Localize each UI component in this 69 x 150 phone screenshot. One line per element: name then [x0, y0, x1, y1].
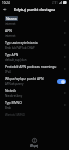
staticText: Więcej [30, 144, 39, 148]
staticText: APN włączony [5, 82, 24, 86]
staticText: Nieokreślony [5, 94, 23, 98]
button[interactable]: Więcej [27, 137, 42, 149]
staticText: APN [5, 28, 12, 33]
staticText: Edytuj punkt dostępu [14, 7, 55, 12]
staticText: Brak lub PAP lub CHAP [5, 46, 35, 50]
button[interactable]: Typ uwierzytelniania [0, 39, 69, 51]
staticText: internet [5, 34, 16, 38]
staticText: internet [5, 22, 16, 26]
button[interactable]: Protokół APN podczas roamingu [0, 63, 69, 75]
staticText: Nośnik [5, 88, 17, 93]
staticText: Typ MVNO [5, 100, 22, 105]
staticText: Wartość MVNO [5, 113, 25, 117]
button[interactable]: Nośnik [0, 87, 69, 99]
staticText: IPv4 [5, 70, 11, 74]
staticText: Brak [5, 106, 11, 110]
button[interactable]: Nazwa [0, 15, 69, 27]
button[interactable]: Typ MVNO [0, 99, 69, 111]
staticText: LTE1 [52, 1, 58, 5]
staticText: Typ uwierzytelniania [5, 40, 38, 45]
button[interactable]: Włącz/wyłącz punkt APN [0, 75, 69, 87]
staticText: Typ APN [5, 52, 19, 57]
staticText: Protokół APN podczas roamingu [5, 64, 57, 69]
button[interactable]: Wstecz [0, 5, 9, 14]
staticText: Nazwa [6, 16, 17, 21]
button[interactable]: APN [0, 27, 69, 39]
staticText: default,supl,dun [5, 58, 27, 62]
staticText: Włącz/wyłącz punkt APN [5, 76, 44, 81]
staticText: 10:24 [2, 1, 10, 5]
button[interactable]: Typ APN [0, 51, 69, 63]
button[interactable]: Przełącznik APN [57, 79, 66, 84]
